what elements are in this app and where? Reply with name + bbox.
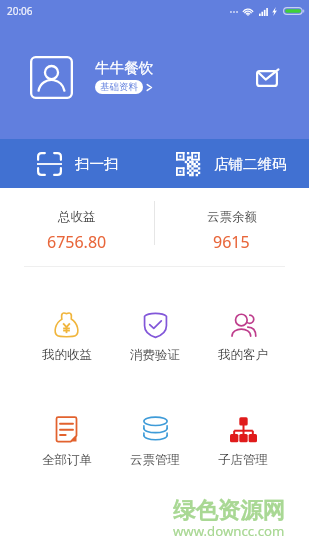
staticText: 总收益 (58, 209, 96, 225)
button[interactable]: 扫一扫 (0, 139, 154, 188)
button[interactable]: 子店管理 (199, 416, 287, 468)
staticText: 全部订单 (42, 452, 92, 468)
button[interactable]: 总收益 (0, 188, 154, 266)
staticText: 子店管理 (218, 452, 268, 468)
staticText: 扫一扫 (75, 155, 119, 173)
staticText: 20:06 (7, 4, 33, 18)
button[interactable]: 店铺二维码 (154, 139, 309, 188)
staticText: 消费验证 (130, 347, 180, 363)
staticText: 我的收益 (42, 347, 92, 363)
button[interactable]: 云票余额 (154, 188, 309, 266)
button[interactable]: 基础资料 (95, 80, 143, 94)
staticText: 店铺二维码 (214, 155, 287, 173)
button[interactable]: 我的收益 (22, 311, 111, 363)
staticText: 基础资料 (100, 81, 138, 93)
staticText: 我的客户 (218, 347, 268, 363)
button[interactable]: 云票管理 (111, 416, 199, 468)
staticText: 云票余额 (207, 209, 257, 225)
staticText: 云票管理 (130, 452, 180, 468)
staticText: 6756.80 (47, 231, 107, 253)
button[interactable]: Messages (251, 64, 283, 93)
button[interactable]: 消费验证 (111, 311, 199, 363)
button[interactable]: 我的客户 (199, 311, 287, 363)
staticText: www.downcc.com (173, 522, 285, 540)
staticText: 9615 (213, 231, 250, 253)
staticText: 牛牛餐饮 (95, 59, 153, 77)
button[interactable]: 全部订单 (22, 416, 111, 468)
staticText: 绿色资源网 (173, 496, 285, 524)
